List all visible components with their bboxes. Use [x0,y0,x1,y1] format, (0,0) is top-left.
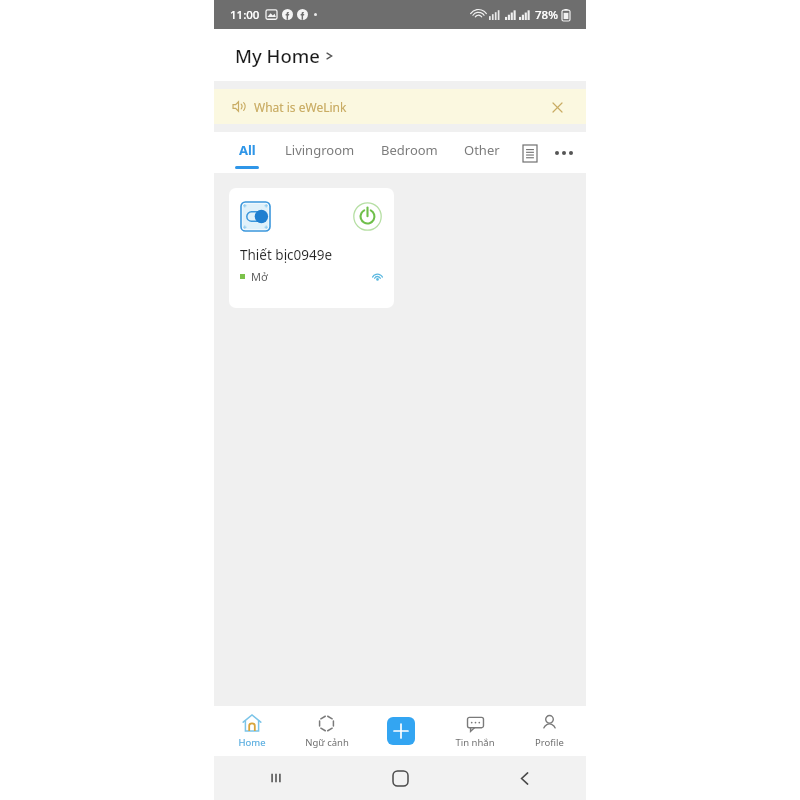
staticText: 11:00 [230,7,260,23]
button[interactable]: More options [547,136,581,170]
button[interactable]: Profile [512,706,586,756]
staticText: What is eWeLink [254,99,347,115]
staticText: All [239,141,256,159]
button[interactable]: Home [338,756,462,800]
button[interactable]: List view [513,136,547,170]
staticText: Ngữ cảnh [305,736,349,749]
staticText: Livingroom [285,141,355,159]
staticText: Thiết bịc0949e [240,246,333,264]
button[interactable]: Ngữ cảnh [289,706,364,756]
staticText: Profile [535,736,564,749]
staticText: 78% [535,7,558,23]
button[interactable]: Close banner [546,96,568,118]
button[interactable]: All [222,132,272,173]
staticText: Bedroom [381,141,438,159]
staticText: Home [238,736,266,749]
button[interactable]: Recent apps [214,756,338,800]
staticText: Other [464,141,500,159]
button[interactable]: My Home [214,29,586,81]
button[interactable]: Bedroom [368,132,451,173]
button[interactable]: Power toggle [351,200,383,232]
button[interactable]: Other [451,132,513,173]
button[interactable]: Back [462,756,586,800]
button[interactable]: Tin nhắn [438,706,512,756]
staticText: My Home [235,43,320,68]
button[interactable]: Add device [364,706,438,756]
staticText: Mở [251,269,268,284]
staticText: Tin nhắn [455,736,495,749]
button[interactable]: Home [214,706,289,756]
button[interactable]: Power toggle [229,188,394,308]
button[interactable]: Livingroom [272,132,368,173]
